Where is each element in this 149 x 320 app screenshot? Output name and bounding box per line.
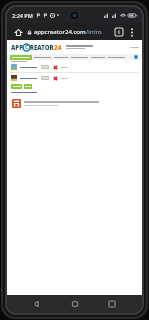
button[interactable] (10, 55, 32, 60)
button[interactable] (11, 84, 22, 89)
other: App icon (12, 99, 21, 108)
button[interactable] (24, 84, 32, 89)
button[interactable]: App icon (12, 99, 138, 108)
staticText: 24 (54, 43, 62, 52)
button[interactable]: Recent apps (105, 297, 119, 311)
other: Language (134, 55, 138, 59)
button[interactable]: Delete (11, 75, 138, 81)
button[interactable]: Delete (11, 64, 138, 70)
staticText: /intro (86, 28, 102, 36)
staticText: 2:24 PM (12, 12, 33, 19)
button[interactable] (41, 76, 49, 80)
staticText: C (25, 44, 29, 51)
button[interactable] (41, 65, 49, 69)
button[interactable]: appcreator24.com (27, 28, 111, 36)
button[interactable]: More options (127, 27, 137, 37)
button[interactable]: Delete (53, 76, 58, 81)
button[interactable]: Delete (53, 65, 58, 70)
staticText: appcreator24.com (34, 28, 86, 36)
button[interactable]: Tabs (113, 26, 125, 38)
button[interactable]: Home (68, 297, 82, 311)
staticText: APP (11, 44, 23, 52)
button[interactable]: Home (12, 26, 24, 38)
button[interactable]: Back (30, 297, 44, 311)
staticText: REATOR (30, 44, 54, 52)
